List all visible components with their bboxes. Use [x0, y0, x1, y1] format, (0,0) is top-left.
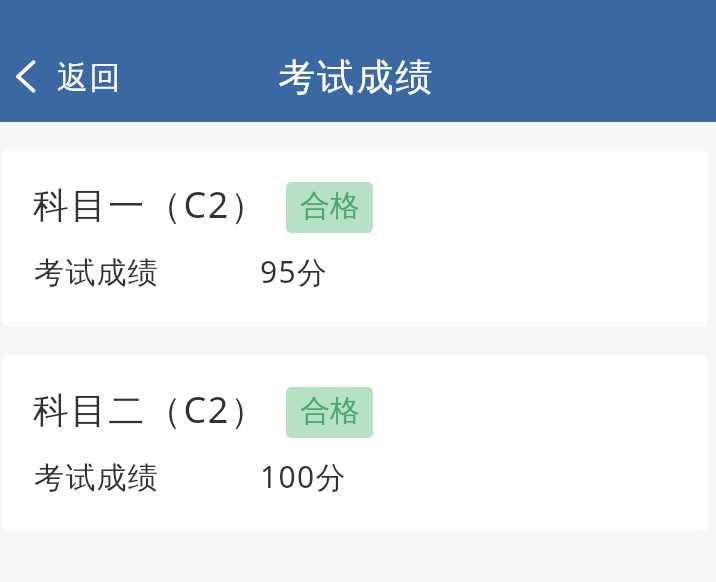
staticText: 考试成绩: [34, 254, 159, 292]
staticText: 95分: [260, 251, 329, 292]
button[interactable]: 科目二（C2）: [2, 355, 708, 531]
staticText: 合格: [300, 392, 360, 430]
staticText: 科目一（C2）: [33, 180, 268, 229]
staticText: 考试成绩: [278, 54, 435, 101]
button[interactable]: 返回 Back: [10, 49, 128, 104]
staticText: 100分: [260, 456, 348, 497]
staticText: 科目二（C2）: [33, 385, 268, 434]
other: Back: [16, 60, 36, 93]
button[interactable]: 科目一（C2）: [2, 150, 708, 326]
staticText: 合格: [300, 187, 360, 225]
staticText: 返回: [57, 58, 122, 97]
staticText: 考试成绩: [34, 459, 159, 497]
